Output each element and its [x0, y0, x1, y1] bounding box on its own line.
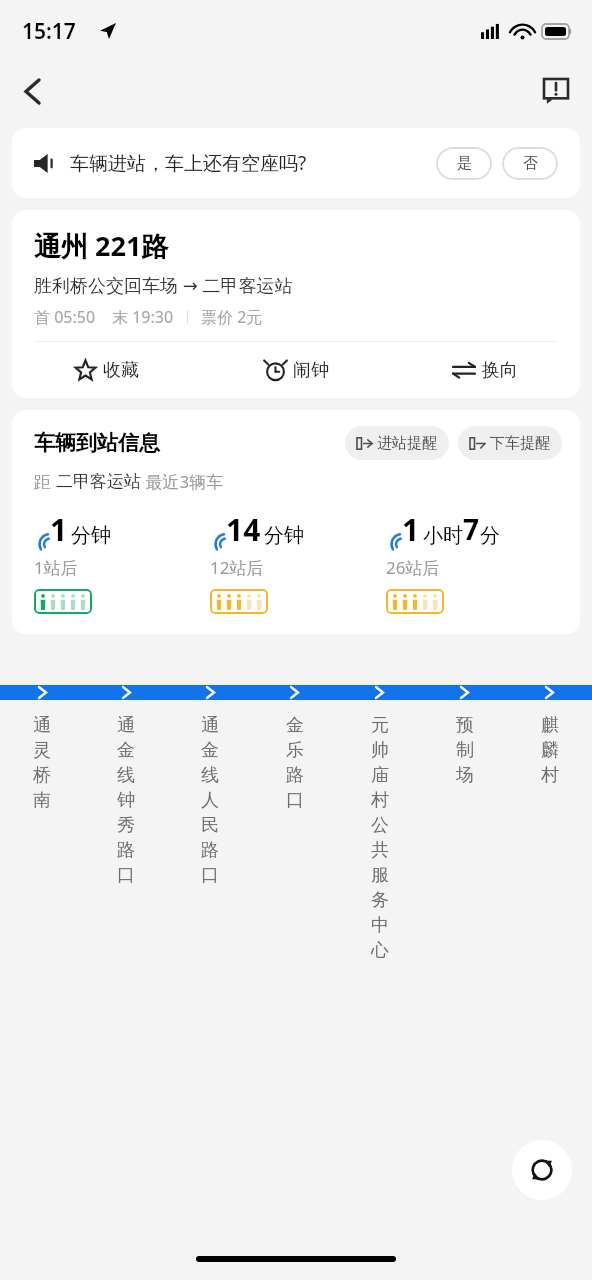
- staticText: 制: [456, 739, 474, 762]
- staticText: 公: [371, 814, 389, 837]
- staticText: 末 19:30: [112, 306, 174, 328]
- staticText: 进站提醒: [377, 434, 437, 453]
- staticText: 南: [33, 789, 51, 812]
- staticText: 1: [402, 509, 420, 550]
- button[interactable]: 1: [386, 509, 562, 614]
- staticText: 1: [50, 509, 68, 550]
- staticText: 民: [201, 814, 219, 837]
- staticText: 距: [34, 470, 56, 493]
- staticText: 是: [457, 154, 472, 173]
- button[interactable]: 进站提醒: [357, 426, 437, 460]
- staticText: 乐: [286, 739, 304, 762]
- button[interactable]: 1: [34, 509, 210, 614]
- button[interactable]: 预: [422, 714, 507, 789]
- staticText: 秀: [117, 814, 135, 837]
- staticText: 口: [201, 864, 219, 887]
- staticText: 二甲客运站: [56, 471, 141, 492]
- staticText: 通: [117, 714, 135, 737]
- button[interactable]: 通: [84, 714, 168, 889]
- button[interactable]: 换向: [391, 342, 580, 398]
- button[interactable]: 14: [210, 509, 386, 614]
- staticText: 分钟: [71, 523, 111, 548]
- button[interactable]: 金: [252, 714, 337, 814]
- staticText: 口: [286, 789, 304, 812]
- staticText: 否: [523, 154, 538, 173]
- button[interactable]: 闹钟: [202, 342, 391, 398]
- staticText: 灵: [33, 739, 51, 762]
- staticText: 预: [456, 714, 474, 737]
- staticText: 闹钟: [293, 359, 329, 382]
- staticText: 26站后: [386, 556, 440, 579]
- button[interactable]: 是: [436, 147, 492, 180]
- staticText: 口: [117, 864, 135, 887]
- button[interactable]: 通: [0, 714, 84, 814]
- staticText: 心: [371, 939, 389, 962]
- staticText: 小时: [423, 523, 463, 548]
- staticText: 中: [371, 914, 389, 937]
- staticText: 桥: [33, 764, 51, 787]
- staticText: 线: [117, 764, 135, 787]
- staticText: 线: [201, 764, 219, 787]
- staticText: 钟: [117, 789, 135, 812]
- staticText: 金: [286, 714, 304, 737]
- button[interactable]: 下车提醒: [470, 426, 550, 460]
- button[interactable]: 否: [502, 147, 558, 180]
- staticText: 麟: [541, 739, 559, 762]
- staticText: 15:17: [22, 17, 76, 46]
- button[interactable]: Refresh: [512, 1140, 572, 1200]
- staticText: 庙: [371, 764, 389, 787]
- staticText: 收藏: [103, 359, 139, 382]
- staticText: 务: [371, 889, 389, 912]
- staticText: 路: [117, 839, 135, 862]
- staticText: 分: [480, 523, 500, 548]
- staticText: 换向: [482, 359, 518, 382]
- staticText: 胜利桥公交回车场 → 二甲客运站: [34, 273, 293, 298]
- staticText: 路: [201, 839, 219, 862]
- button[interactable]: 通: [168, 714, 252, 889]
- staticText: 人: [201, 789, 219, 812]
- staticText: 下车提醒: [490, 434, 550, 453]
- staticText: 通: [33, 714, 51, 737]
- staticText: 麒: [541, 714, 559, 737]
- staticText: 分钟: [264, 523, 304, 548]
- staticText: 12站后: [210, 556, 264, 579]
- staticText: 通州 221路: [34, 227, 169, 264]
- staticText: 场: [456, 764, 474, 787]
- staticText: 村: [371, 789, 389, 812]
- staticText: 金: [117, 739, 135, 762]
- staticText: 共: [371, 839, 389, 862]
- staticText: 车辆到站信息: [34, 430, 160, 456]
- staticText: 14: [226, 509, 261, 550]
- button[interactable]: Back: [8, 67, 56, 115]
- staticText: 7: [463, 510, 480, 548]
- staticText: 路: [286, 764, 304, 787]
- staticText: 车辆进站，车上还有空座吗?: [70, 150, 307, 176]
- staticText: 帅: [371, 739, 389, 762]
- button[interactable]: 麒: [507, 714, 592, 789]
- staticText: 票价 2元: [201, 306, 263, 328]
- staticText: 元: [371, 714, 389, 737]
- staticText: 通: [201, 714, 219, 737]
- button[interactable]: Feedback: [532, 67, 580, 115]
- staticText: 服: [371, 864, 389, 887]
- button[interactable]: 收藏: [12, 342, 202, 398]
- staticText: 金: [201, 739, 219, 762]
- staticText: 村: [541, 764, 559, 787]
- staticText: 1站后: [34, 556, 78, 579]
- staticText: 首 05:50: [34, 306, 96, 328]
- staticText: 最近3辆车: [141, 470, 224, 493]
- button[interactable]: 元: [337, 714, 422, 964]
